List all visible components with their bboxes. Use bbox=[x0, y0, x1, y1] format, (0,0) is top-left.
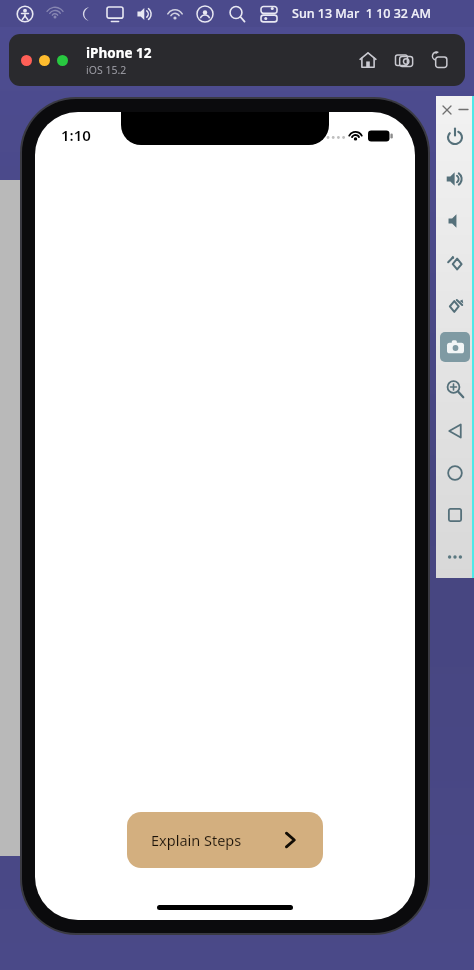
staticText: 1:10 bbox=[61, 125, 91, 145]
button[interactable]: Minimize bbox=[457, 103, 470, 116]
button[interactable]: Screenshot bbox=[440, 332, 470, 362]
button[interactable]: Screenshot bbox=[391, 47, 417, 73]
button[interactable]: Close bbox=[440, 103, 453, 116]
button[interactable]: Control Center bbox=[258, 3, 280, 25]
button[interactable]: Minimize bbox=[39, 55, 50, 66]
button[interactable]: Home bbox=[440, 458, 470, 488]
button[interactable]: Explain Steps bbox=[127, 812, 323, 868]
button[interactable]: Home bbox=[355, 47, 381, 73]
button[interactable]: Maximize bbox=[57, 55, 68, 66]
button[interactable]: Rotate right bbox=[440, 290, 470, 320]
staticText: Sun 13 Mar 1 10 32 AM bbox=[292, 5, 431, 22]
staticText: iOS 15.2 bbox=[86, 63, 127, 77]
button[interactable]: Do Not Disturb bbox=[74, 3, 96, 25]
button[interactable]: Search bbox=[226, 3, 248, 25]
button[interactable]: Close bbox=[21, 55, 32, 66]
button[interactable]: Volume up bbox=[440, 164, 470, 194]
button[interactable]: User bbox=[194, 3, 216, 25]
staticText: iPhone 12 bbox=[86, 44, 152, 62]
button[interactable]: Rotate left bbox=[440, 248, 470, 278]
button[interactable]: Overview bbox=[440, 500, 470, 530]
button[interactable]: Rotate bbox=[427, 47, 453, 73]
staticText: Explain Steps bbox=[151, 830, 242, 850]
button[interactable]: Accessibility bbox=[14, 3, 36, 25]
button[interactable]: Back bbox=[440, 416, 470, 446]
button[interactable]: AirDrop bbox=[44, 3, 66, 25]
button[interactable]: Zoom bbox=[440, 374, 470, 404]
button[interactable]: Volume down bbox=[440, 206, 470, 236]
button[interactable]: More bbox=[440, 542, 470, 572]
button[interactable]: Volume bbox=[134, 3, 156, 25]
button[interactable]: Display bbox=[104, 3, 126, 25]
button[interactable]: Wi-Fi bbox=[164, 3, 186, 25]
button[interactable]: Power bbox=[440, 122, 470, 152]
